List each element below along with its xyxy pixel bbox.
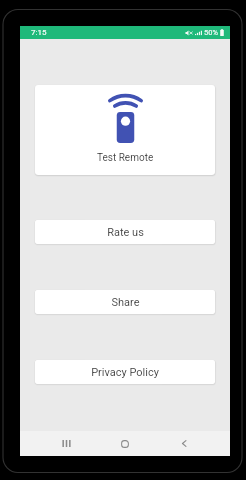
staticText: Share [111, 296, 140, 309]
staticText: Test Remote [97, 152, 154, 164]
button[interactable]: Back [169, 431, 199, 456]
button[interactable]: Test Remote [35, 85, 215, 175]
button[interactable]: Share [35, 290, 215, 314]
staticText: 7:15 [31, 28, 47, 37]
button[interactable]: Rate us [35, 220, 215, 244]
button[interactable]: Recent apps [51, 431, 81, 456]
staticText: Privacy Policy [91, 366, 159, 379]
button[interactable]: Home [110, 431, 140, 456]
staticText: Rate us [107, 226, 144, 239]
button[interactable]: Privacy Policy [35, 360, 215, 384]
staticText: 50% [204, 28, 218, 37]
